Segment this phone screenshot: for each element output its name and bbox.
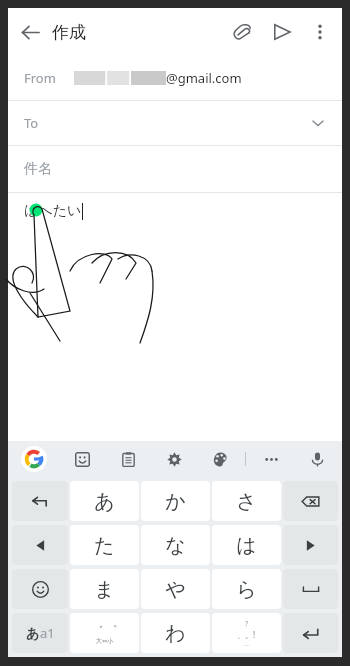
button[interactable]: More [258,446,284,472]
button[interactable]: や [141,569,210,609]
button[interactable]: Clipboard [115,446,141,472]
staticText: わ [165,621,186,646]
button[interactable]: な [141,525,210,565]
staticText: @gmail.com [166,69,242,87]
staticText: は [236,533,257,558]
staticText: a1 [40,624,55,642]
button[interactable]: ? [212,613,281,653]
staticText: 件名 [24,160,52,178]
button[interactable] [12,525,68,565]
button[interactable]: Themes [207,446,233,472]
button[interactable]: さ [212,481,281,521]
staticText: 、。! [237,629,256,640]
button[interactable]: To [8,101,342,145]
button[interactable] [283,525,338,565]
staticText: た [94,533,115,558]
staticText: To [24,114,39,132]
staticText: ま [94,577,115,602]
button[interactable]: Settings [161,446,187,472]
staticText: ? [245,619,249,629]
staticText: From [24,69,56,87]
button[interactable]: 件名 [8,146,342,192]
button[interactable]: ま [70,569,139,609]
button[interactable] [283,613,338,653]
staticText: ... [244,640,249,648]
staticText: あ [26,625,40,641]
staticText: 作成 [52,22,86,43]
staticText: はへたい [24,202,82,220]
staticText: な [165,533,186,558]
staticText: ら [236,577,257,602]
button[interactable]: あ [70,481,139,521]
button[interactable]: Voice input [304,446,330,472]
staticText: や [165,577,186,602]
button[interactable] [12,481,68,521]
button[interactable]: From [8,56,342,100]
button[interactable]: わ [141,613,210,653]
staticText: ゛ ゜ [92,622,118,637]
button[interactable]: か [141,481,210,521]
button[interactable] [12,569,68,609]
button[interactable] [283,569,338,609]
button[interactable]: ら [212,569,281,609]
button[interactable]: Attach file [222,12,262,52]
staticText: か [165,489,186,514]
button[interactable]: Stickers [69,446,95,472]
button[interactable]: More options [302,14,338,50]
button[interactable]: ゛ ゜ [70,613,139,653]
button[interactable]: た [70,525,139,565]
button[interactable]: Send [262,12,302,52]
button[interactable]: はへたい [8,193,342,441]
button[interactable]: あ [12,613,68,653]
button[interactable]: Google [20,445,48,473]
staticText: あ [94,489,115,514]
staticText: 大⇔小 [96,637,114,645]
staticText: さ [236,489,257,514]
button[interactable]: Back [8,10,52,54]
button[interactable]: は [212,525,281,565]
button[interactable] [283,481,338,521]
